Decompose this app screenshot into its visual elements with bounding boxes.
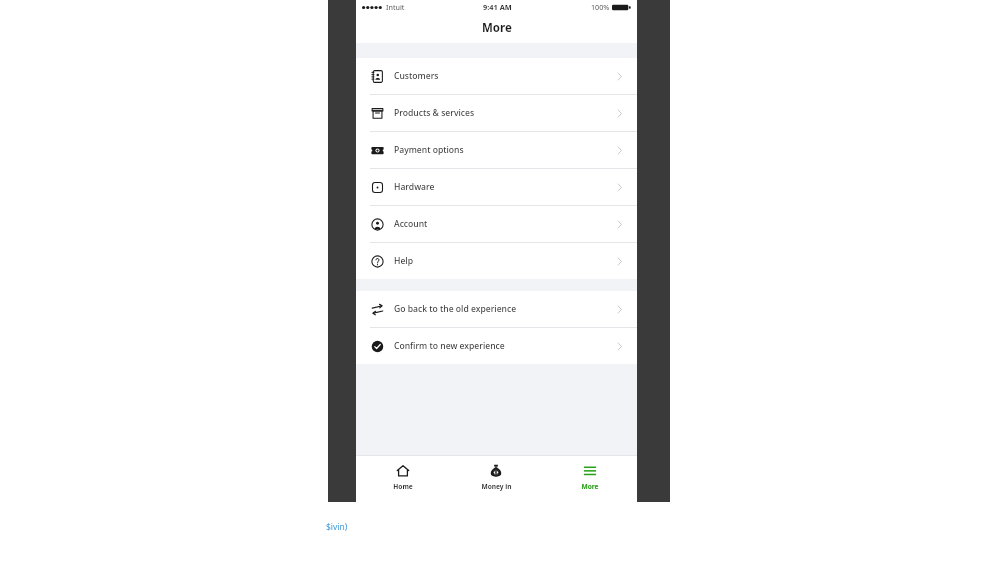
button[interactable]: Products & services [356,95,637,132]
button[interactable]: Help [356,243,637,279]
staticText: Money in [481,482,512,491]
staticText: 9:41 AM [483,2,512,12]
staticText: Help [394,255,613,267]
staticText: Home [393,482,413,491]
staticText: More [581,482,599,491]
button[interactable]: Confirm to new experience [356,328,637,364]
staticText: Go back to the old experience [394,303,613,315]
staticText: Confirm to new experience [394,340,613,352]
staticText: Products & services [394,107,613,119]
button[interactable]: Payment options [356,132,637,169]
staticText: Payment options [394,144,613,156]
staticText: Hardware [394,181,613,193]
button[interactable]: More [543,455,637,502]
button[interactable]: Hardware [356,169,637,206]
button[interactable]: Go back to the old experience [356,291,637,328]
button[interactable]: Money in [449,455,543,502]
staticText: Customers [394,70,613,82]
staticText: $ivin) [326,521,348,533]
button[interactable]: Customers [356,58,637,95]
button[interactable]: Home [356,455,449,502]
staticText: Account [394,218,613,230]
staticText: Intuit [386,2,405,12]
button[interactable]: Account [356,206,637,243]
staticText: More [482,20,512,36]
staticText: 100% [591,2,610,12]
